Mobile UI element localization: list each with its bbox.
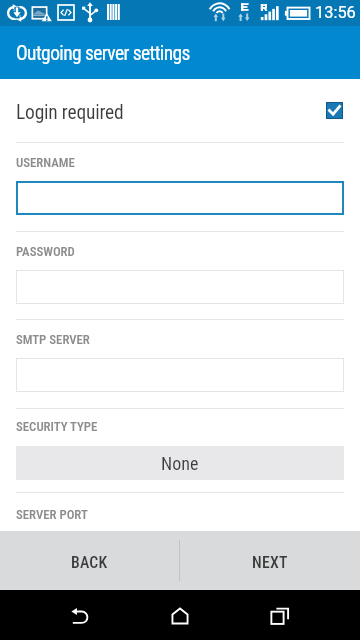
button[interactable] [16,270,344,304]
staticText: SMTP SERVER [16,332,90,347]
button[interactable] [16,358,344,392]
staticText: SECURITY TYPE [16,419,98,434]
staticText: Login required [16,101,124,124]
staticText: NEXT [252,553,288,572]
button[interactable]: BACK [0,531,179,590]
button[interactable]: Home [130,590,230,640]
other: Login required [326,102,343,119]
staticText: None [161,453,199,474]
button[interactable] [16,181,344,215]
staticText: USERNAME [16,155,75,170]
button[interactable]: Login required [0,79,360,142]
staticText: 13:56 [315,3,356,22]
button[interactable]: NEXT [180,531,360,590]
staticText: Outgoing server settings [16,42,190,65]
button[interactable]: None [16,446,344,480]
staticText: PASSWORD [16,244,75,259]
button[interactable]: Recent apps [230,590,330,640]
staticText: BACK [71,553,108,572]
button[interactable]: Back [30,590,130,640]
staticText: SERVER PORT [16,507,88,522]
